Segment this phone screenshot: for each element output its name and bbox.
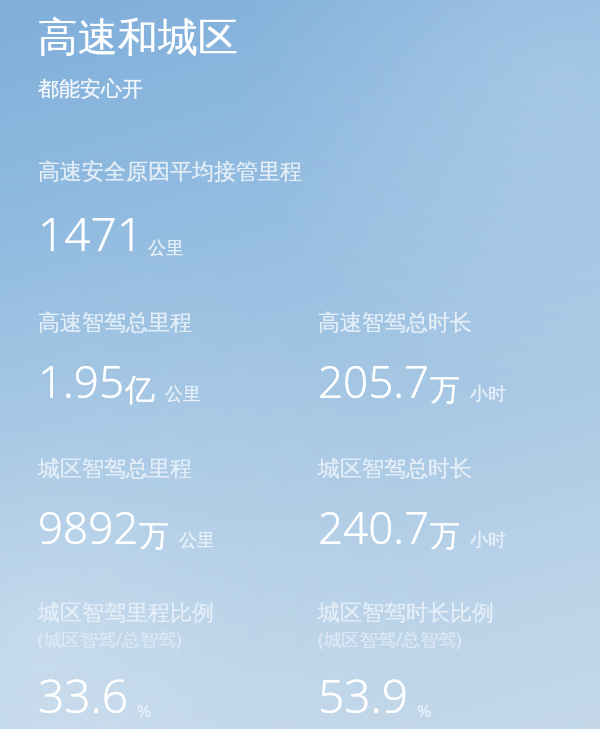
staticText: 公里 [165, 383, 201, 406]
staticText: (城区智驾/总智驾) [38, 627, 182, 652]
staticText: 城区智驾时长比例 [318, 599, 494, 627]
staticText: 高速智驾总时长 [318, 309, 472, 337]
staticText: 小时 [470, 383, 506, 406]
staticText: % [417, 699, 432, 722]
staticText: 1471 [38, 202, 144, 265]
staticText: 公里 [148, 237, 184, 260]
staticText: 城区智驾总里程 [38, 455, 192, 483]
staticText: 33.6 [38, 664, 129, 727]
staticText: 万 [139, 517, 169, 555]
staticText: 205.7 [318, 351, 430, 411]
staticText: 小时 [470, 529, 506, 552]
staticText: 240.7 [318, 497, 430, 557]
staticText: 9892 [38, 497, 139, 557]
staticText: % [137, 699, 152, 722]
staticText: 亿 [125, 371, 155, 409]
staticText: 高速安全原因平均接管里程 [38, 158, 302, 186]
staticText: 1.95 [38, 351, 125, 411]
staticText: 都能安心开 [38, 76, 143, 102]
staticText: 高速和城区 [38, 12, 238, 62]
staticText: 城区智驾里程比例 [38, 599, 214, 627]
staticText: 高速智驾总里程 [38, 309, 192, 337]
staticText: 53.9 [318, 664, 409, 727]
staticText: 城区智驾总时长 [318, 455, 472, 483]
staticText: 公里 [179, 529, 215, 552]
staticText: 万 [430, 371, 460, 409]
staticText: (城区智驾/总智驾) [318, 627, 462, 652]
staticText: 万 [430, 517, 460, 555]
